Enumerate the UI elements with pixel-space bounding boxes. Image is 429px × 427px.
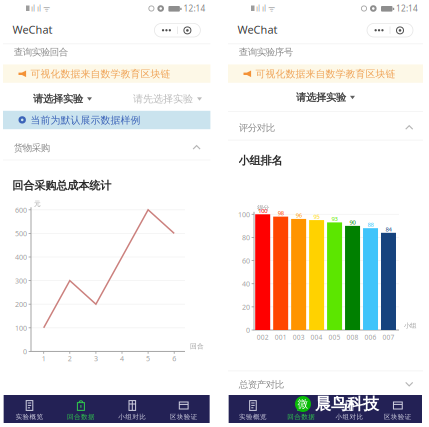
staticText: 货物采购 [14,142,50,154]
staticText: 实验概览 [15,413,43,421]
staticText: 400 [15,252,27,262]
staticText: 小组排名 [239,153,283,167]
staticText: 007 [382,333,394,342]
staticText: 元 [34,200,41,208]
staticText: 查询实验回合 [14,46,68,58]
staticText: 12:14 [396,3,418,14]
staticText: 区块验证 [384,413,412,421]
staticText: 95 [314,212,320,220]
staticText: 小组 [404,321,416,330]
staticText: 88 [367,221,373,229]
staticText: 实验概览 [239,413,267,421]
staticText: 84 [385,225,391,233]
staticText: 可视化数据来自数学教育区块链 [255,68,395,80]
button[interactable]: 回合数据 [277,395,325,423]
staticText: WeChat [237,22,277,37]
staticText: 得分 [257,204,269,212]
staticText: 请选择实验 [296,91,346,104]
staticText: 6 [172,354,176,363]
button[interactable]: 总资产对比 [228,373,423,397]
staticText: 008 [347,333,359,342]
button[interactable]: 请选择实验 [33,92,92,106]
staticText: 回合采购总成本统计 [12,178,111,192]
staticText: ıl ıl ᯤ [31,3,50,14]
staticText: 3 [94,354,98,363]
staticText: 5 [146,354,150,363]
staticText: 回合数据 [287,413,315,421]
staticText: 500 [15,229,27,238]
staticText: 80 [242,233,250,242]
staticText: 96 [296,211,302,219]
button[interactable]: 小组对比 [325,395,374,423]
button[interactable]: 实验概览 [4,395,55,423]
staticText: 微 [297,397,308,411]
staticText: 0 [23,347,27,356]
staticText: 小组对比 [118,413,146,421]
staticText: 4 [120,354,124,363]
button[interactable]: 请选择实验 [296,90,355,104]
staticText: 2 [68,354,72,363]
staticText: 93 [332,215,338,223]
staticText: 002 [257,333,269,342]
staticText: 100 [238,210,250,219]
staticText: 300 [15,276,27,285]
button[interactable]: More options [154,23,200,37]
staticText: 100 [258,207,267,215]
staticText: 查询实验序号 [239,46,293,58]
staticText: 006 [364,333,376,342]
staticText: 回合 [190,342,204,351]
staticText: 003 [293,333,305,342]
staticText: WeChat [12,22,52,37]
button[interactable]: 小组对比 [107,395,158,423]
staticText: 小组对比 [335,413,363,421]
staticText: ıl ıl ᯤ [256,3,275,14]
staticText: 005 [329,333,341,342]
staticText: 001 [275,333,287,342]
staticText: 可视化数据来自数学教育区块链 [30,68,170,80]
staticText: 100 [15,323,27,333]
staticText: 40 [242,279,250,289]
staticText: 当前为默认展示数据样例 [30,114,140,126]
staticText: 总资产对比 [239,379,284,390]
staticText: 20 [242,302,250,312]
button[interactable]: More options [367,23,413,37]
staticText: 请先选择实验 [133,93,193,105]
button[interactable]: 货物采购 [3,136,210,160]
staticText: 12:14 [183,3,205,14]
staticText: 回合数据 [67,413,95,421]
staticText: 200 [15,299,27,309]
staticText: 90 [350,218,356,226]
staticText: 0 [246,325,250,335]
staticText: 98 [278,209,284,217]
staticText: 晨鸟科技 [315,394,379,414]
staticText: 请选择实验 [33,93,83,105]
button[interactable]: 区块验证 [374,395,422,423]
button[interactable]: 评分对比 [228,116,423,140]
button[interactable]: 区块验证 [158,395,209,423]
button[interactable]: 实验概览 [229,395,277,423]
staticText: 60 [242,256,250,265]
staticText: 600 [15,205,27,215]
staticText: 004 [311,333,323,342]
button[interactable]: 请先选择实验 [133,92,202,106]
staticText: 区块验证 [170,413,198,421]
staticText: 评分对比 [239,122,275,134]
staticText: 1 [42,354,46,363]
button[interactable]: 回合数据 [55,395,107,423]
